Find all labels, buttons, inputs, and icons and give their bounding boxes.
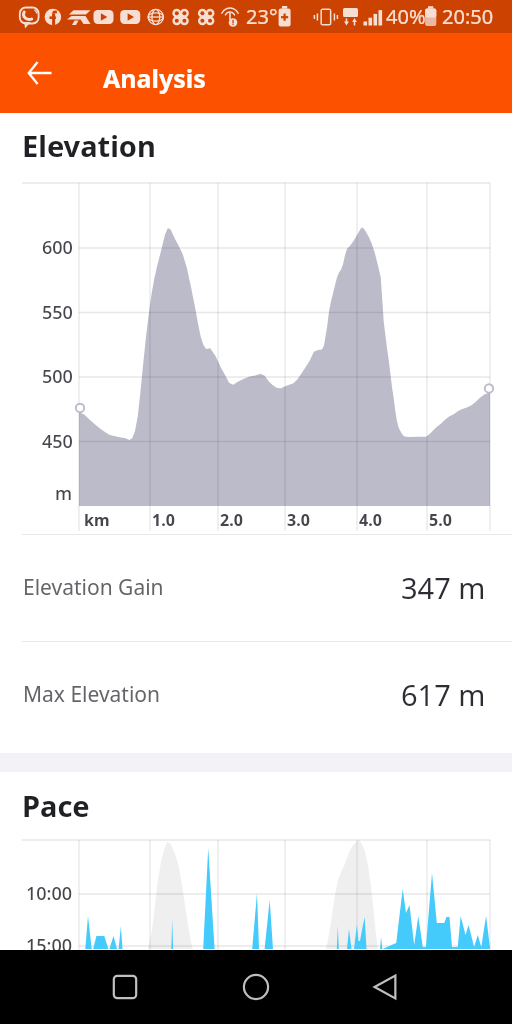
staticText: Max Elevation — [23, 680, 161, 709]
button[interactable]: Back — [360, 961, 412, 1013]
button[interactable]: Home — [230, 961, 282, 1013]
staticText: 23° — [246, 3, 278, 30]
staticText: Elevation — [22, 126, 156, 165]
staticText: 40% — [386, 3, 426, 30]
staticText: 4.0 — [359, 509, 382, 531]
staticText: 3.0 — [287, 509, 310, 531]
staticText: 20:50 — [442, 3, 494, 30]
staticText: 600 — [42, 235, 73, 260]
button[interactable]: Elevation Gain — [0, 534, 512, 641]
button[interactable]: Navigate up — [16, 49, 64, 97]
staticText: 347 m — [401, 568, 486, 607]
button[interactable]: Max Elevation — [0, 641, 512, 748]
staticText: 617 m — [401, 675, 486, 714]
staticText: Elevation Gain — [23, 573, 164, 602]
staticText: 15:00 — [26, 933, 73, 958]
staticText: km — [84, 509, 110, 531]
staticText: 500 — [42, 364, 73, 389]
staticText: Analysis — [103, 61, 206, 95]
staticText: 5.0 — [429, 509, 452, 531]
staticText: 550 — [42, 300, 73, 325]
staticText: m — [55, 481, 73, 506]
button[interactable]: Recent apps — [99, 961, 151, 1013]
staticText: 1.0 — [152, 509, 175, 531]
staticText: 10:00 — [26, 881, 73, 906]
staticText: 2.0 — [220, 509, 243, 531]
staticText: 450 — [42, 429, 73, 454]
staticText: Pace — [22, 786, 90, 825]
